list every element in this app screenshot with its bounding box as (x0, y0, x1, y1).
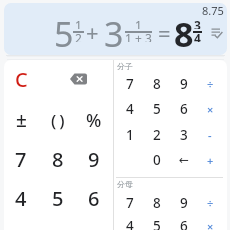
staticText: 分子 (117, 61, 133, 71)
button[interactable]: 9 (77, 140, 111, 178)
button[interactable]: 6 (171, 97, 197, 121)
staticText: 8 (153, 194, 161, 212)
staticText: × (207, 102, 214, 117)
staticText: × (207, 219, 214, 230)
staticText: ± (16, 107, 27, 133)
button[interactable]: 7 (117, 191, 143, 215)
button[interactable]: 2 (144, 123, 170, 147)
staticText: 6 (180, 217, 188, 230)
staticText: 2 (75, 30, 82, 42)
staticText: 6 (88, 185, 100, 212)
button[interactable]: × (197, 97, 223, 121)
button[interactable]: 4 (117, 97, 143, 121)
button[interactable]: C (4, 60, 38, 98)
staticText: 8 (153, 75, 161, 93)
staticText: ( ) (51, 109, 65, 132)
staticText: % (86, 108, 102, 133)
button[interactable]: 8 (144, 191, 170, 215)
staticText: + (207, 153, 214, 168)
button[interactable]: + (197, 148, 223, 172)
staticText: ÷ (207, 77, 214, 92)
button[interactable]: 9 (171, 191, 197, 215)
button[interactable]: ÷ (197, 191, 223, 215)
staticText: 7 (126, 75, 134, 93)
staticText: 7 (126, 194, 134, 212)
button[interactable]: 7 (4, 140, 38, 178)
staticText: 5 (153, 217, 161, 230)
staticText: ← (179, 153, 190, 167)
button[interactable]: 5 (144, 214, 170, 230)
button[interactable]: ÷ (197, 72, 223, 96)
staticText: 9 (88, 146, 100, 173)
staticText: 9 (180, 194, 188, 212)
button[interactable]: % (77, 101, 111, 139)
staticText: 3 (180, 126, 188, 144)
button[interactable]: 6 (171, 214, 197, 230)
staticText: 6 (180, 100, 188, 118)
button[interactable]: 5 (41, 179, 75, 217)
staticText: 1 (75, 17, 82, 29)
button[interactable]: × (197, 214, 223, 230)
button[interactable]: 8 (41, 140, 75, 178)
button[interactable]: ± (4, 101, 38, 139)
staticText: 7 (15, 146, 27, 173)
staticText: 5 (54, 11, 74, 55)
button[interactable]: 4 (4, 179, 38, 217)
staticText: ÷ (207, 196, 214, 211)
staticText: 分母 (117, 179, 133, 189)
button[interactable]: 9 (171, 72, 197, 96)
staticText: + (86, 17, 99, 47)
button[interactable]: 0 (144, 148, 170, 172)
staticText: 3 (194, 17, 201, 29)
button[interactable]: 8 (144, 72, 170, 96)
staticText: 3 (104, 11, 124, 55)
button[interactable]: - (197, 123, 223, 147)
button[interactable]: 7 (117, 72, 143, 96)
staticText: 4 (126, 217, 134, 230)
staticText: C (15, 66, 28, 93)
button[interactable]: 6 (77, 179, 111, 217)
staticText: 0 (153, 151, 161, 169)
staticText: 4 (15, 185, 27, 212)
staticText: 4 (194, 30, 201, 42)
staticText: 1 (135, 17, 142, 29)
staticText: 9 (180, 75, 188, 93)
staticText: = (158, 18, 171, 48)
staticText: 8.75 (202, 3, 224, 15)
button[interactable]: 4 (117, 214, 143, 230)
staticText: 8 (174, 11, 194, 55)
staticText: - (208, 128, 212, 143)
staticText: 1 + 3 (125, 30, 152, 42)
staticText: 5 (153, 100, 161, 118)
button[interactable] (48, 60, 108, 98)
button[interactable]: 1 (117, 123, 143, 147)
staticText: 8 (52, 146, 64, 173)
staticText: 1 (126, 126, 134, 144)
staticText: 5 (52, 185, 64, 212)
staticText: 2 (153, 126, 161, 144)
button[interactable]: ← (171, 148, 197, 172)
button[interactable]: 3 (171, 123, 197, 147)
staticText: 4 (126, 100, 134, 118)
button[interactable]: ( ) (41, 101, 75, 139)
button[interactable]: 5 (144, 97, 170, 121)
